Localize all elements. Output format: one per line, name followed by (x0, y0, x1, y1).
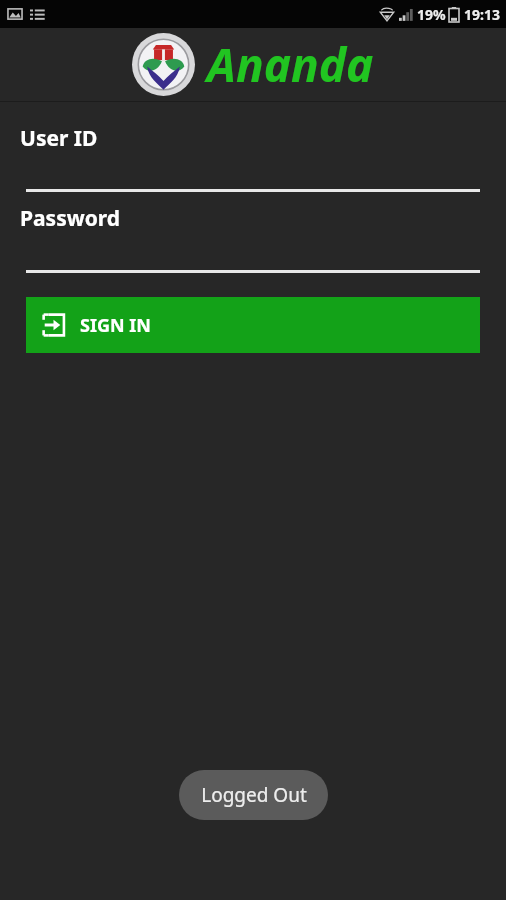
staticText: Logged Out (201, 782, 307, 808)
staticText: SIGN IN (80, 313, 151, 338)
staticText: User ID (20, 124, 98, 153)
staticText: Ananda (207, 33, 374, 96)
button[interactable]: SIGN IN (26, 297, 480, 353)
staticText: 19% (417, 5, 446, 24)
staticText: Password (20, 204, 121, 233)
staticText: 19:13 (464, 5, 500, 24)
